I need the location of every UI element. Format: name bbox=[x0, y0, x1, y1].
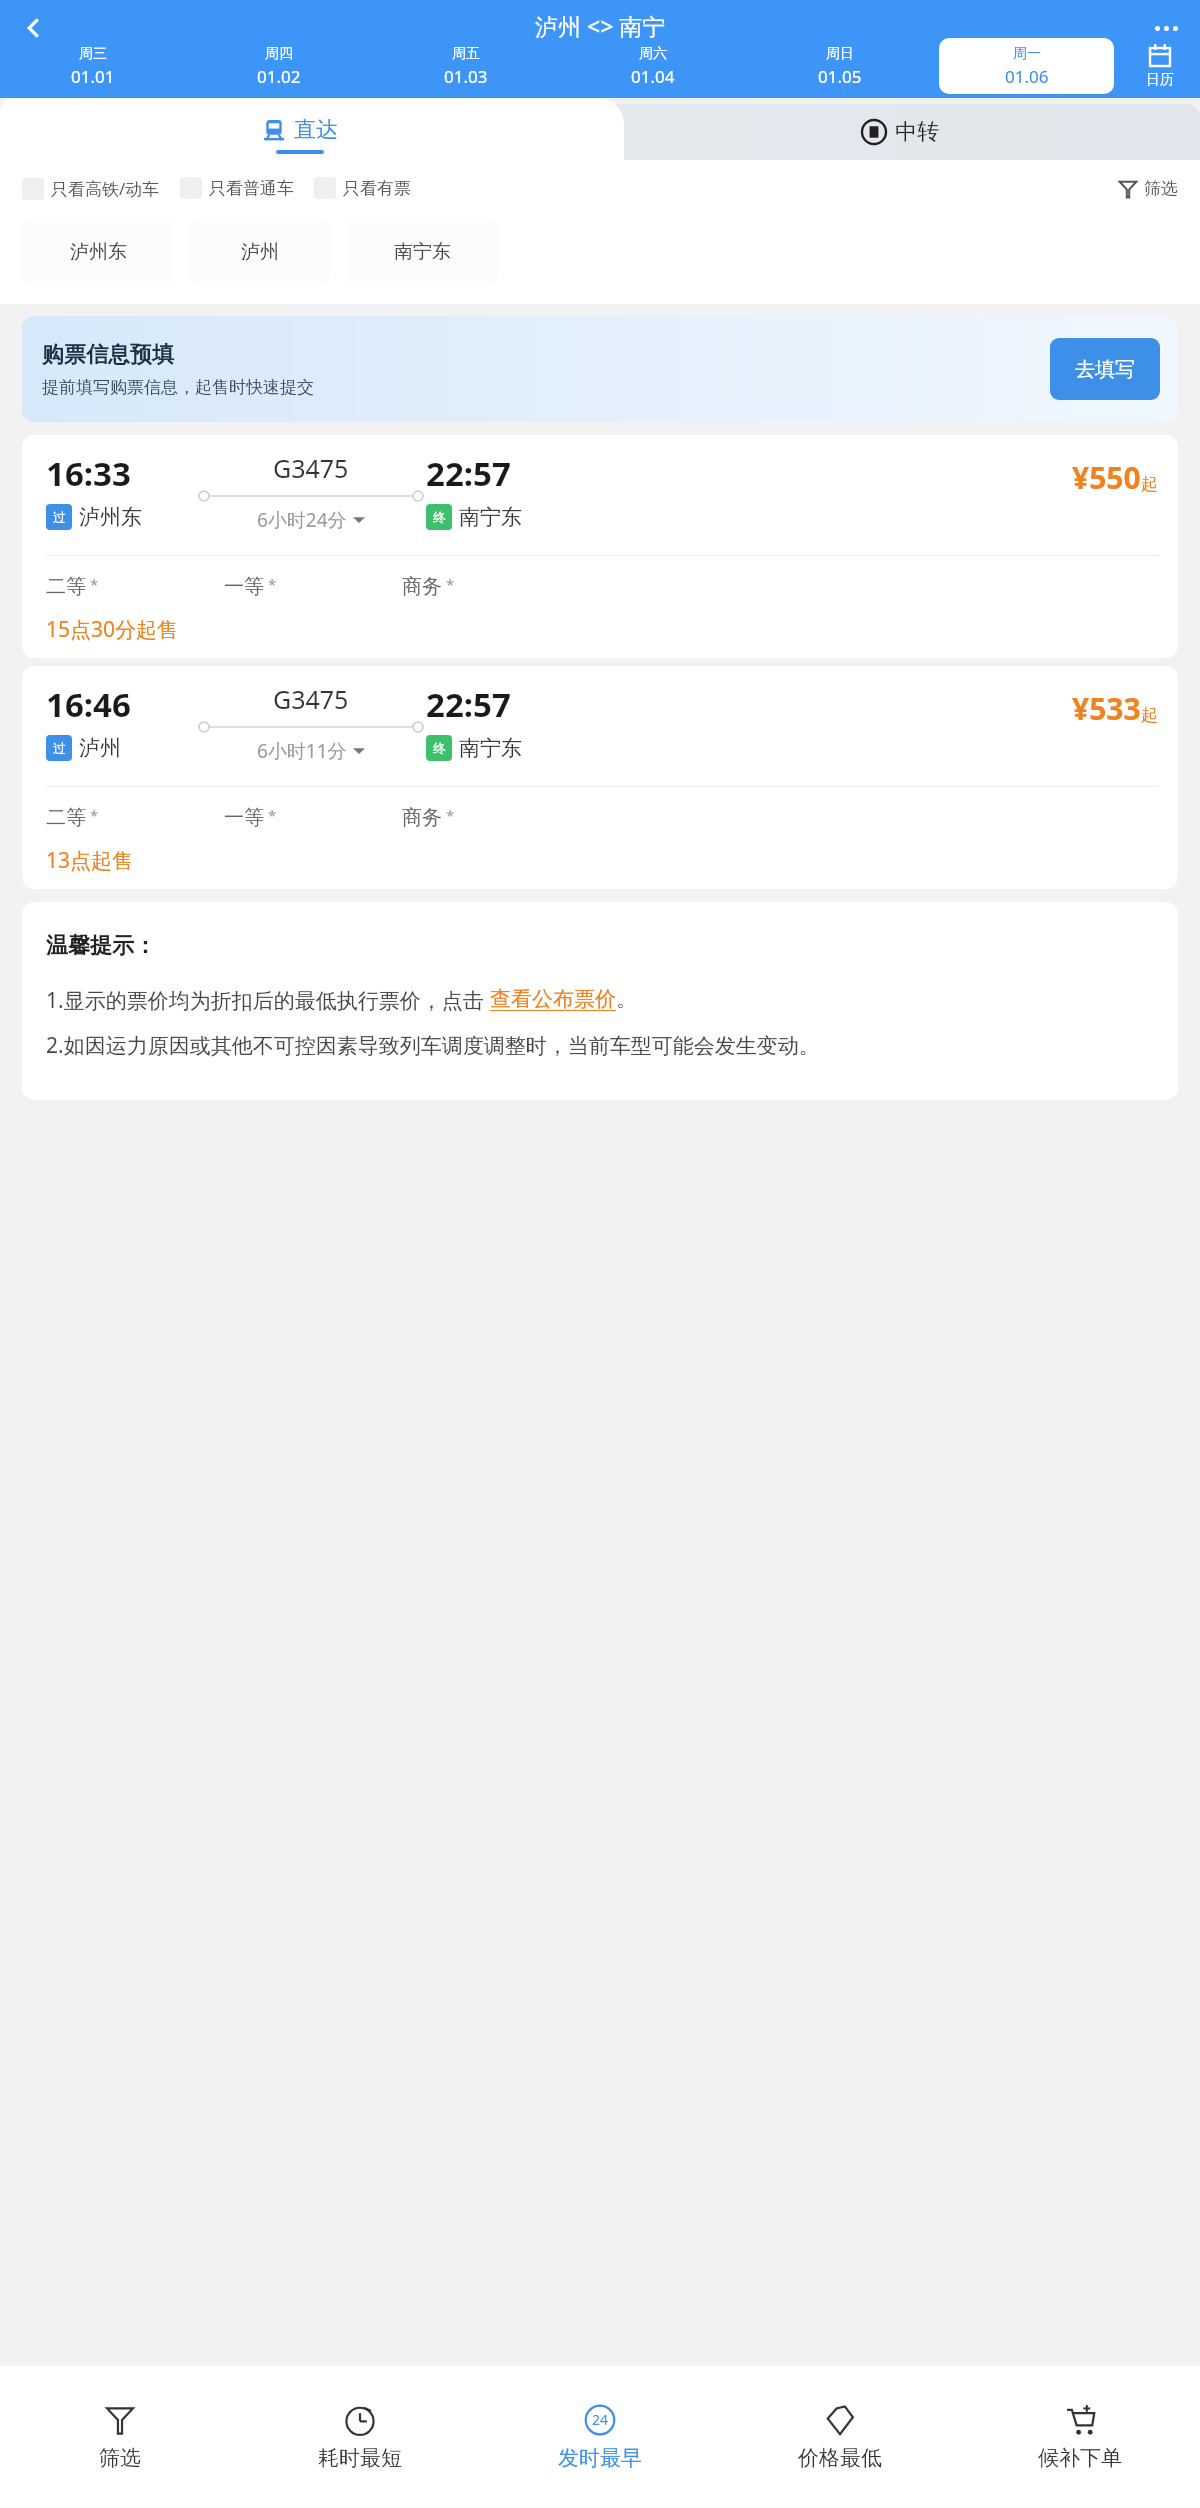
staticText: 01.05 bbox=[818, 65, 862, 88]
staticText: 16:33 bbox=[46, 451, 131, 496]
staticText: 筛选 bbox=[1144, 178, 1178, 199]
staticText: 候补下单 bbox=[1038, 2445, 1122, 2471]
staticText: * bbox=[86, 574, 99, 594]
button[interactable]: More options bbox=[1142, 4, 1190, 52]
button[interactable]: 周日 bbox=[752, 38, 927, 94]
staticText: 16:46 bbox=[46, 682, 131, 727]
staticText: 过 bbox=[53, 509, 66, 525]
button[interactable]: 周六 bbox=[565, 38, 740, 94]
staticText: 6小时24分 bbox=[257, 507, 347, 533]
staticText: G3475 bbox=[273, 682, 349, 716]
button[interactable]: Calendar bbox=[1120, 38, 1200, 94]
staticText: 周六 bbox=[639, 45, 667, 63]
staticText: 周一 bbox=[1013, 45, 1041, 63]
staticText: 周日 bbox=[826, 45, 854, 63]
staticText: 周五 bbox=[452, 45, 480, 63]
staticText: 24 bbox=[592, 2410, 609, 2429]
staticText: 去填写 bbox=[1075, 357, 1135, 382]
staticText: 温馨提示： bbox=[46, 932, 156, 960]
staticText: 6小时11分 bbox=[257, 738, 347, 764]
staticText: 筛选 bbox=[99, 2445, 141, 2471]
button[interactable]: Back bbox=[10, 4, 58, 52]
staticText: G3475 bbox=[273, 451, 349, 485]
staticText: 商务 bbox=[402, 574, 442, 599]
button[interactable]: 耗时最短 bbox=[240, 2366, 480, 2508]
button[interactable]: 发时最早 bbox=[480, 2366, 720, 2508]
staticText: 。 bbox=[616, 986, 637, 1012]
staticText: 22:57 bbox=[426, 682, 511, 727]
staticText: * bbox=[442, 574, 455, 594]
staticText: * bbox=[442, 805, 455, 825]
button[interactable]: 泸州 bbox=[190, 218, 330, 286]
staticText: 15点30分起售 bbox=[46, 615, 179, 644]
button[interactable]: 中转 bbox=[600, 98, 1200, 160]
staticText: 直达 bbox=[294, 116, 338, 144]
staticText: 过 bbox=[53, 740, 66, 756]
staticText: 只看高铁/动车 bbox=[51, 177, 160, 200]
staticText: 提前填写购票信息，起售时快速提交 bbox=[42, 377, 314, 398]
staticText: 2.如因运力原因或其他不可控因素导致列车调度调整时，当前车型可能会发生变动。 bbox=[46, 1031, 820, 1060]
button[interactable]: 购票信息预填 bbox=[22, 316, 1178, 422]
staticText: 南宁东 bbox=[394, 240, 451, 264]
staticText: 22:57 bbox=[426, 451, 511, 496]
staticText: 01.03 bbox=[444, 65, 488, 88]
staticText: 起 bbox=[1141, 705, 1158, 726]
staticText: 泸州 <> 南宁 bbox=[535, 10, 666, 41]
staticText: ¥533 bbox=[1072, 688, 1141, 729]
button[interactable]: 筛选 bbox=[0, 2366, 240, 2508]
staticText: 南宁东 bbox=[459, 735, 522, 761]
staticText: 只看有票 bbox=[343, 178, 411, 199]
button[interactable]: 候补下单 bbox=[960, 2366, 1200, 2508]
staticText: 耗时最短 bbox=[318, 2445, 402, 2471]
staticText: 泸州 bbox=[241, 240, 279, 264]
staticText: * bbox=[264, 574, 277, 594]
staticText: 周四 bbox=[265, 45, 293, 63]
staticText: 01.01 bbox=[71, 65, 115, 88]
button[interactable]: 只看有票 bbox=[314, 177, 431, 199]
button[interactable]: 周三 bbox=[6, 38, 180, 94]
staticText: 一等 bbox=[224, 805, 264, 830]
staticText: * bbox=[264, 805, 277, 825]
staticText: 南宁东 bbox=[459, 504, 522, 530]
staticText: 起 bbox=[1141, 474, 1158, 495]
button[interactable]: 筛选 bbox=[1118, 178, 1178, 199]
staticText: ¥550 bbox=[1072, 457, 1141, 498]
staticText: 价格最低 bbox=[798, 2445, 882, 2471]
staticText: 一等 bbox=[224, 574, 264, 599]
staticText: 日历 bbox=[1146, 71, 1174, 89]
staticText: 泸州 bbox=[79, 735, 121, 761]
staticText: 01.06 bbox=[1005, 65, 1049, 88]
staticText: 商务 bbox=[402, 805, 442, 830]
button[interactable]: 泸州东 bbox=[22, 218, 174, 286]
staticText: 13点起售 bbox=[46, 846, 134, 875]
staticText: 发时最早 bbox=[558, 2445, 642, 2471]
button[interactable]: 16:46 bbox=[22, 666, 1178, 889]
staticText: * bbox=[86, 805, 99, 825]
staticText: 中转 bbox=[895, 118, 939, 146]
staticText: 二等 bbox=[46, 805, 86, 830]
staticText: 终 bbox=[433, 509, 446, 525]
button[interactable]: 周五 bbox=[378, 38, 553, 94]
button[interactable]: 16:33 bbox=[22, 435, 1178, 658]
staticText: 01.02 bbox=[257, 65, 301, 88]
staticText: 01.04 bbox=[631, 65, 675, 88]
button[interactable]: 价格最低 bbox=[720, 2366, 960, 2508]
button[interactable]: 周一 bbox=[939, 38, 1114, 94]
staticText: 泸州东 bbox=[79, 504, 142, 530]
staticText: 1.显示的票价均为折扣后的最低执行票价，点击 bbox=[46, 986, 490, 1015]
staticText: 二等 bbox=[46, 574, 86, 599]
button[interactable]: 南宁东 bbox=[346, 218, 498, 286]
button[interactable]: 周四 bbox=[192, 38, 366, 94]
staticText: 终 bbox=[433, 740, 446, 756]
staticText: 购票信息预填 bbox=[42, 341, 174, 369]
staticText: 泸州东 bbox=[70, 240, 127, 264]
staticText: 只看普通车 bbox=[209, 178, 294, 199]
button[interactable]: 查看公布票价 bbox=[490, 986, 616, 1012]
button[interactable]: 去填写 bbox=[1050, 338, 1160, 400]
button[interactable]: 直达 bbox=[0, 98, 600, 160]
staticText: 周三 bbox=[79, 45, 107, 63]
button[interactable]: 只看普通车 bbox=[180, 177, 314, 199]
button[interactable]: 只看高铁/动车 bbox=[22, 177, 180, 200]
